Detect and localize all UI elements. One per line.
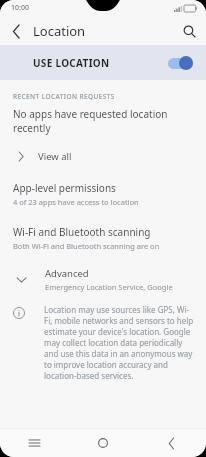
button[interactable]: Search: [178, 20, 200, 42]
button[interactable]: Back: [137, 429, 206, 457]
staticText: Emergency Location Service, Google Locat…: [45, 282, 198, 292]
staticText: Both Wi-Fi and Bluetooth scanning are on: [13, 241, 160, 251]
staticText: Location: [33, 22, 86, 40]
staticText: 4 of 23 apps have access to location: [13, 197, 139, 207]
staticText: App-level permissions: [13, 181, 116, 195]
staticText: View all: [38, 150, 72, 163]
button[interactable]: Advanced: [0, 267, 206, 292]
staticText: Advanced: [45, 267, 89, 280]
staticText: No apps have requested location recently: [13, 107, 206, 135]
button[interactable]: App-level permissions: [0, 181, 206, 207]
button[interactable]: Wi-Fi and Bluetooth scanning: [0, 225, 206, 251]
staticText: RECENT LOCATION REQUESTS: [13, 92, 115, 101]
staticText: 10:00: [11, 3, 29, 13]
button[interactable]: View all: [0, 145, 206, 167]
button[interactable]: Back: [5, 20, 27, 42]
button[interactable]: Recent apps: [0, 429, 68, 457]
button[interactable]: Home: [68, 429, 137, 457]
staticText: Wi-Fi and Bluetooth scanning: [13, 225, 151, 239]
staticText: Location may use sources like GPS, Wi-Fi…: [44, 304, 194, 381]
button[interactable]: USE LOCATION: [0, 45, 206, 80]
staticText: USE LOCATION: [33, 56, 110, 70]
